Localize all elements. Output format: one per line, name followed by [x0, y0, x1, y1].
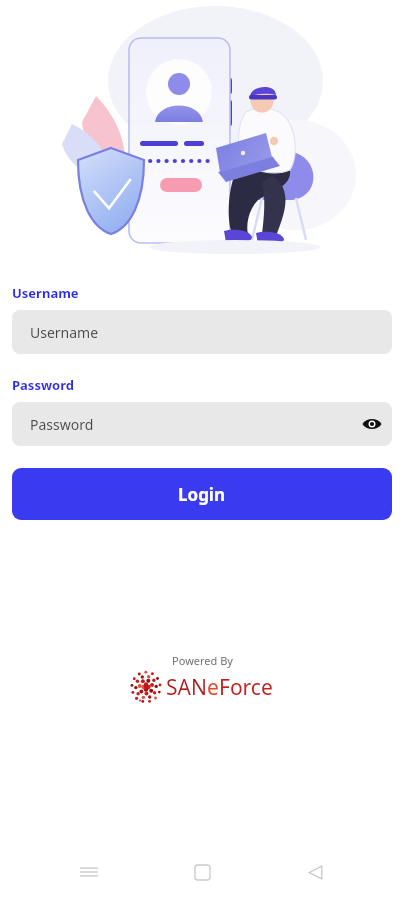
staticText: Powered By [172, 653, 233, 668]
staticText: e [207, 673, 219, 702]
button[interactable]: Login [12, 468, 392, 520]
button[interactable]: Password [12, 402, 392, 446]
button[interactable]: Show password [352, 404, 392, 444]
staticText: Username [30, 323, 99, 342]
staticText: Force [219, 673, 273, 702]
staticText: Login [178, 483, 226, 506]
button[interactable]: Home [178, 848, 226, 896]
button[interactable]: Recent apps [65, 848, 113, 896]
staticText: Username [12, 284, 79, 302]
staticText: Password [30, 415, 94, 434]
staticText: SAN [166, 673, 207, 702]
button[interactable]: Username [12, 310, 392, 354]
staticText: Password [12, 376, 74, 394]
button[interactable]: Back [291, 848, 339, 896]
